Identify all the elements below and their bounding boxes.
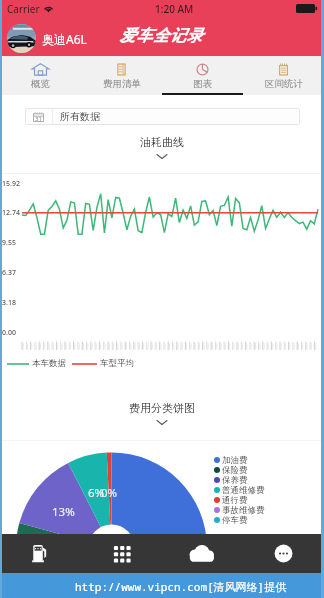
staticText: 31 bbox=[35, 115, 42, 123]
button[interactable]: 图表 bbox=[162, 56, 243, 95]
button[interactable]: Categories bbox=[81, 534, 162, 573]
staticText: http://www.vipcn.com[清风网络]提供 bbox=[75, 579, 287, 594]
staticText: 奥迪A6L bbox=[42, 31, 87, 47]
staticText: 普通维修费 bbox=[222, 485, 265, 495]
staticText: 12.74 bbox=[2, 208, 20, 218]
staticText: 0% bbox=[101, 485, 118, 501]
staticText: 0.00 bbox=[2, 328, 16, 338]
button[interactable]: 概览 bbox=[0, 56, 81, 95]
staticText: 车型平均 bbox=[100, 358, 134, 369]
staticText: 13% bbox=[52, 504, 75, 520]
staticText: 爱车全记录 bbox=[119, 26, 203, 46]
staticText: 停车费 bbox=[222, 515, 248, 525]
staticText: 本车数据 bbox=[32, 358, 66, 369]
staticText: 费用清单 bbox=[103, 78, 141, 90]
staticText: 保养费 bbox=[222, 475, 248, 485]
staticText: 图表 bbox=[193, 78, 212, 90]
staticText: 6.37 bbox=[2, 268, 16, 278]
button[interactable]: Vehicle bbox=[7, 24, 36, 53]
staticText: 区间统计 bbox=[265, 78, 303, 90]
button[interactable]: More bbox=[243, 534, 324, 573]
button[interactable]: Cloud sync bbox=[162, 534, 243, 573]
staticText: 加油费 bbox=[222, 455, 248, 465]
staticText: Carrier bbox=[7, 2, 40, 16]
staticText: 油耗曲线 bbox=[140, 135, 184, 149]
staticText: 通行费 bbox=[222, 495, 248, 505]
button[interactable]: 费用清单 bbox=[81, 56, 162, 95]
button[interactable]: 31 bbox=[25, 108, 300, 125]
staticText: 所有数据 bbox=[60, 110, 100, 123]
button[interactable]: 油耗曲线 bbox=[0, 135, 324, 160]
button[interactable]: 费用分类饼图 bbox=[0, 401, 324, 426]
staticText: 概览 bbox=[31, 78, 50, 90]
button[interactable]: Refuel bbox=[0, 534, 81, 573]
staticText: 费用分类饼图 bbox=[129, 401, 195, 415]
staticText: 9.55 bbox=[2, 238, 16, 248]
staticText: 保险费 bbox=[222, 465, 248, 475]
staticText: 3.18 bbox=[2, 298, 16, 308]
staticText: 1:20 AM bbox=[155, 2, 194, 16]
staticText: 15.92 bbox=[2, 179, 20, 189]
staticText: 事故维修费 bbox=[222, 505, 265, 515]
staticText: 6% bbox=[88, 485, 105, 501]
button[interactable]: 区间统计 bbox=[243, 56, 324, 95]
